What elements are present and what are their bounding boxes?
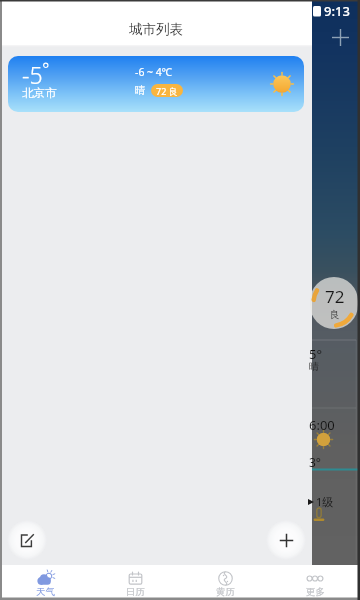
staticText: 城市列表 bbox=[129, 21, 183, 38]
staticText: 1级 bbox=[316, 494, 334, 509]
other: Add bbox=[332, 29, 349, 46]
staticText: 更多 bbox=[306, 586, 325, 598]
staticText: 晴 bbox=[135, 84, 146, 97]
staticText: 日历 bbox=[126, 586, 145, 598]
staticText: 黄历 bbox=[216, 586, 235, 598]
staticText: 3° bbox=[309, 454, 322, 470]
staticText: 6:00 bbox=[309, 416, 335, 434]
staticText: 天气 bbox=[36, 586, 55, 598]
button[interactable]: Add city bbox=[266, 520, 306, 560]
staticText: 72 bbox=[325, 285, 345, 308]
button[interactable]: 天气 bbox=[0, 565, 90, 600]
staticText: 72 良 bbox=[156, 85, 178, 97]
staticText: -6 ~ 4℃ bbox=[135, 65, 173, 79]
staticText: 北京市 bbox=[22, 86, 57, 100]
button[interactable]: 黄历 bbox=[180, 565, 270, 600]
button[interactable]: 日历 bbox=[90, 565, 180, 600]
button[interactable]: Edit city list bbox=[7, 520, 47, 560]
staticText: -5 bbox=[22, 59, 43, 90]
staticText: 9:13 bbox=[324, 2, 350, 20]
staticText: 5° bbox=[309, 345, 323, 363]
staticText: 良 bbox=[330, 308, 340, 321]
button[interactable]: -5 bbox=[8, 56, 304, 112]
button[interactable]: 更多 bbox=[270, 565, 360, 600]
staticText: 晴 bbox=[309, 360, 319, 373]
